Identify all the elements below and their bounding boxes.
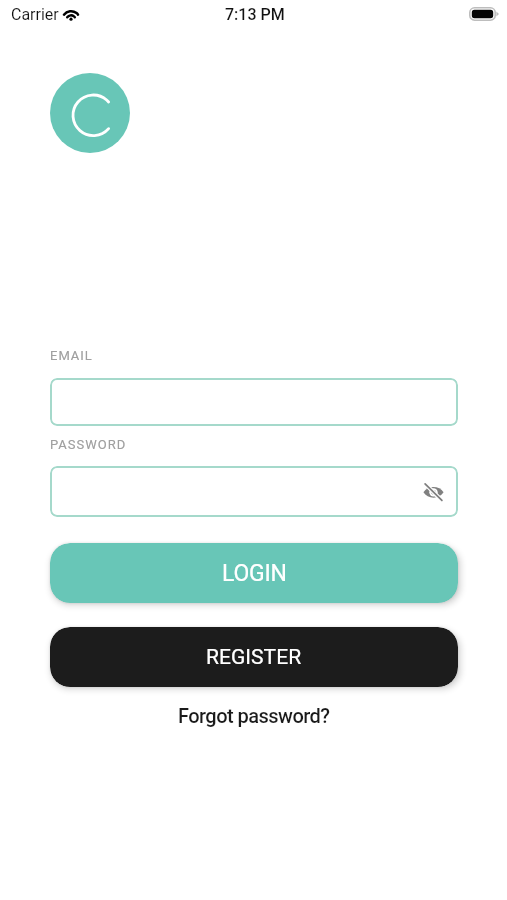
button[interactable]: Forgot password?	[174, 702, 334, 729]
staticText: PASSWORD	[50, 437, 127, 452]
staticText: Forgot password?	[178, 704, 330, 727]
staticText: Carrier	[11, 5, 59, 24]
staticText: REGISTER	[206, 645, 302, 670]
button[interactable]	[50, 378, 458, 426]
button[interactable]: REGISTER	[50, 627, 458, 687]
button[interactable]: Show password	[420, 479, 446, 505]
staticText: EMAIL	[50, 348, 93, 363]
staticText: 7:13 PM	[225, 5, 285, 24]
button[interactable]: Show password	[50, 466, 458, 517]
staticText: LOGIN	[222, 560, 287, 587]
button[interactable]: LOGIN	[50, 543, 458, 603]
